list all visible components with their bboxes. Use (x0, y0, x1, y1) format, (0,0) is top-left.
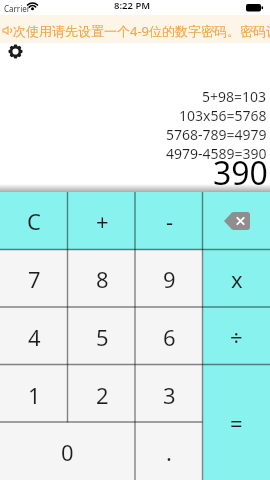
staticText: 2 (96, 380, 109, 410)
button[interactable]: 3 (136, 366, 203, 424)
button[interactable]: 1 (0, 366, 68, 424)
button[interactable]: 0 (0, 424, 135, 480)
staticText: 103x56=5768 (179, 106, 267, 125)
staticText: + (96, 206, 109, 236)
staticText: C (27, 206, 41, 236)
staticText: . (166, 437, 172, 467)
button[interactable]: 次使用请先设置一个4-9位的数字密码。密码设置 (0, 15, 270, 43)
button[interactable]: x (203, 250, 270, 308)
button[interactable]: 6 (136, 308, 203, 366)
staticText: 6 (163, 322, 176, 352)
button[interactable]: ÷ (203, 308, 270, 366)
button[interactable]: 4 (0, 308, 68, 366)
button[interactable]: 5 (68, 308, 136, 366)
staticText: ÷ (230, 322, 243, 352)
staticText: 5768-789=4979 (166, 125, 267, 144)
staticText: 7 (28, 264, 41, 294)
button[interactable]: - (136, 192, 203, 250)
staticText: 4979-4589=390 (166, 144, 267, 163)
button[interactable]: = (203, 366, 270, 480)
staticText: Carrier (4, 3, 31, 14)
button[interactable]: . (135, 424, 203, 480)
button[interactable]: 7 (0, 250, 68, 308)
button[interactable]: + (68, 192, 136, 250)
staticText: 8:22 PM (114, 0, 151, 12)
button[interactable] (203, 192, 270, 250)
staticText: 8 (96, 264, 109, 294)
staticText: 4 (28, 322, 41, 352)
button[interactable]: 8 (68, 250, 136, 308)
staticText: 次使用请先设置一个4-9位的数字密码。密码设置 (13, 22, 270, 40)
staticText: x (231, 264, 243, 294)
button[interactable] (5, 41, 25, 61)
staticText: - (166, 206, 174, 236)
button[interactable]: C (0, 192, 68, 250)
staticText: 0 (61, 437, 74, 467)
button[interactable]: 2 (68, 366, 136, 424)
staticText: 390 (213, 151, 268, 195)
staticText: 1 (28, 380, 41, 410)
staticText: 3 (163, 380, 176, 410)
staticText: 9 (163, 264, 176, 294)
button[interactable]: 9 (136, 250, 203, 308)
staticText: 5 (96, 322, 109, 352)
staticText: = (230, 408, 243, 438)
staticText: 5+98=103 (202, 87, 267, 106)
